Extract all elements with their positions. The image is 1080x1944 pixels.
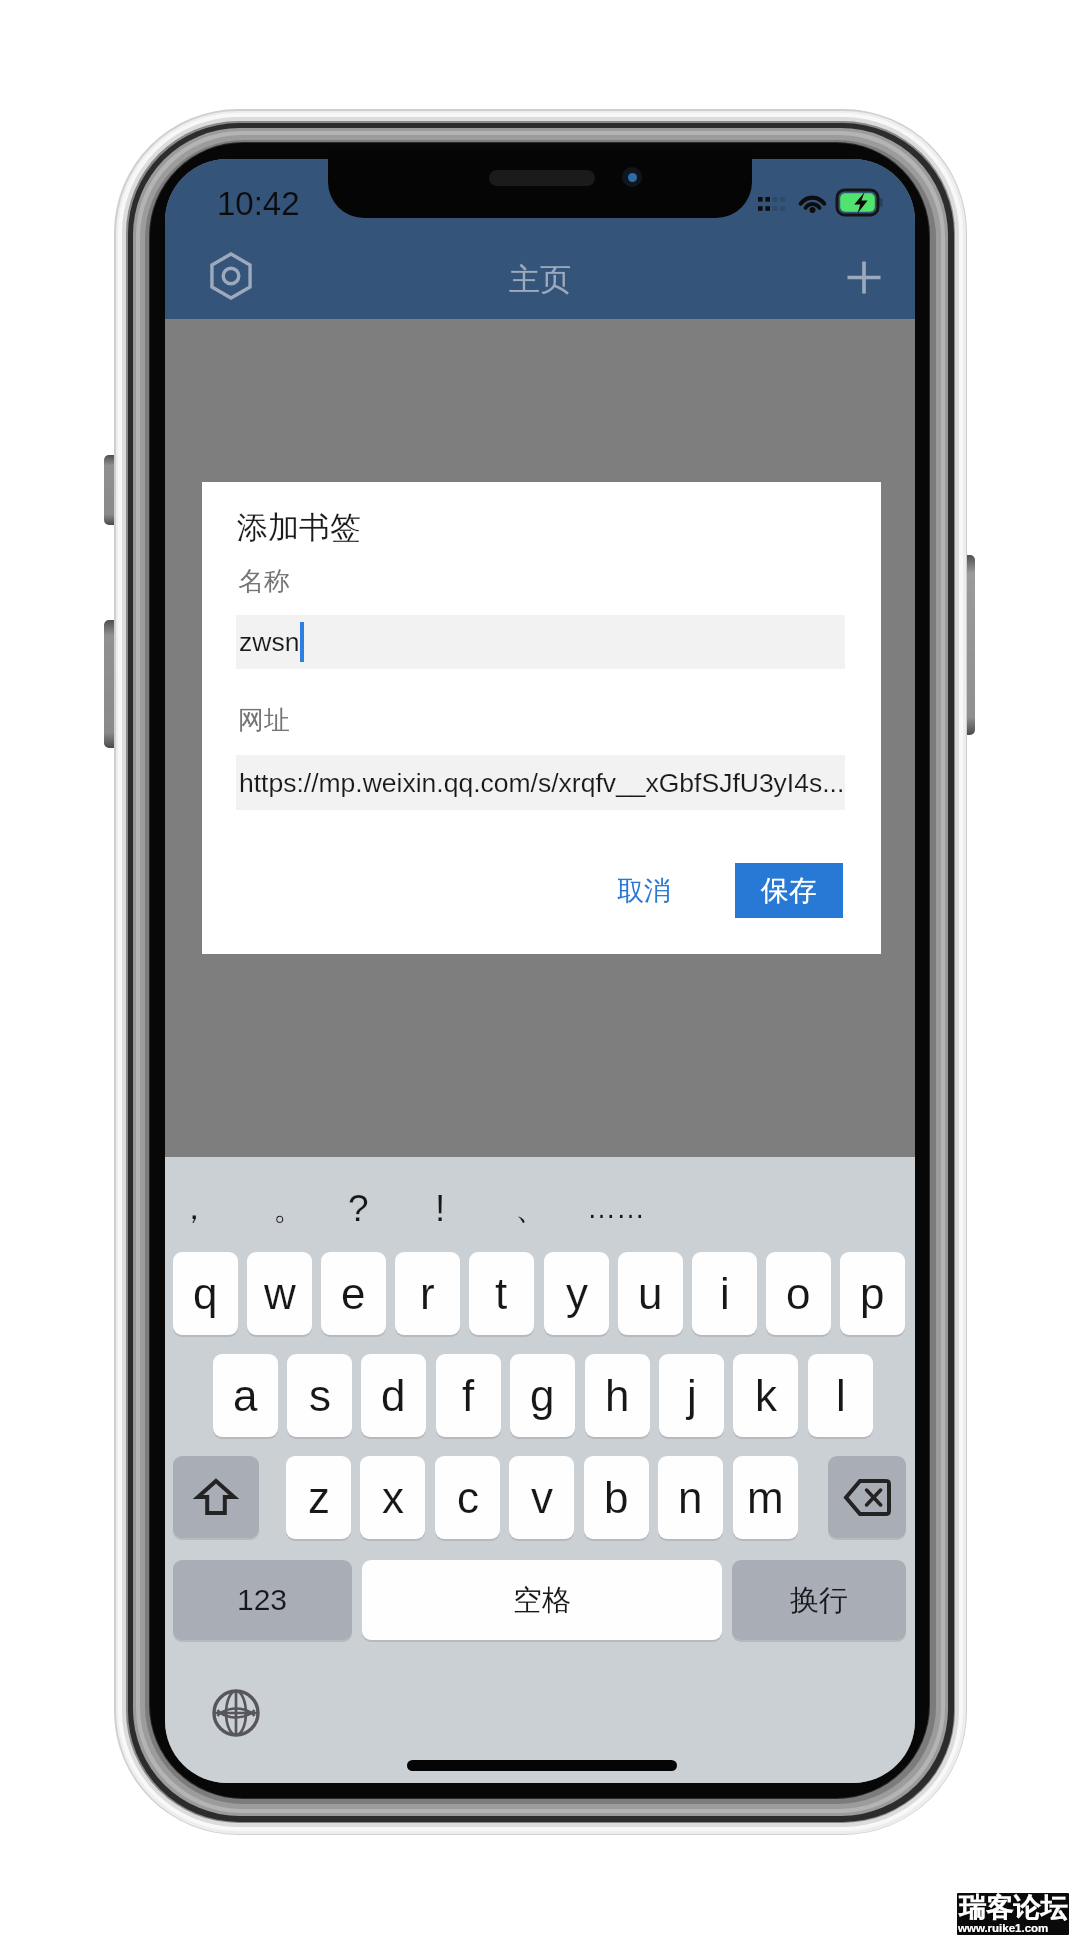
button[interactable]: …… <box>578 1175 654 1241</box>
button[interactable]: b <box>584 1456 649 1539</box>
staticText: j <box>687 1371 697 1420</box>
button[interactable]: l <box>808 1354 873 1437</box>
button[interactable]: 123 <box>173 1560 352 1640</box>
button[interactable]: h <box>585 1354 650 1437</box>
staticText: t <box>495 1269 508 1318</box>
button[interactable]: ! <box>402 1175 478 1241</box>
button[interactable]: w <box>247 1252 312 1335</box>
staticText: 。 <box>273 1188 305 1228</box>
staticText: 空格 <box>513 1582 571 1619</box>
button[interactable]: y <box>544 1252 609 1335</box>
staticText: z <box>308 1473 330 1522</box>
staticText: g <box>530 1371 555 1420</box>
button[interactable]: c <box>435 1456 500 1539</box>
button[interactable]: ， <box>165 1175 232 1241</box>
staticText: b <box>604 1473 629 1522</box>
staticText: n <box>678 1473 703 1522</box>
button[interactable]: v <box>509 1456 574 1539</box>
staticText: 瑞客论坛 <box>959 1893 1067 1925</box>
staticText: s <box>309 1371 331 1420</box>
button[interactable]: a <box>213 1354 278 1437</box>
staticText: https://mp.weixin.qq.com/s/xrqfv__xGbfSJ… <box>239 768 845 798</box>
button[interactable]: 删除 <box>828 1456 906 1538</box>
button[interactable]: m <box>733 1456 798 1539</box>
staticText: f <box>462 1371 475 1420</box>
staticText: k <box>755 1371 777 1420</box>
button[interactable]: u <box>618 1252 683 1335</box>
button[interactable]: g <box>510 1354 575 1437</box>
staticText: x <box>382 1473 404 1522</box>
button[interactable]: e <box>321 1252 386 1335</box>
staticText: i <box>720 1269 730 1318</box>
button[interactable]: 换行 <box>732 1560 906 1640</box>
button[interactable]: 。 <box>251 1175 327 1241</box>
button[interactable]: 空格 <box>362 1560 722 1640</box>
staticText: 名称 <box>238 565 290 598</box>
staticText: a <box>233 1371 258 1420</box>
staticText: zwsn <box>239 627 300 657</box>
button[interactable]: https://mp.weixin.qq.com/s/xrqfv__xGbfSJ… <box>236 755 845 810</box>
button[interactable]: s <box>287 1354 352 1437</box>
staticText: …… <box>587 1192 645 1224</box>
staticText: 添加书签 <box>237 508 361 547</box>
button[interactable]: k <box>733 1354 798 1437</box>
staticText: ? <box>348 1188 369 1229</box>
staticText: r <box>420 1269 435 1318</box>
staticText: l <box>836 1371 846 1420</box>
staticText: 10:42 <box>217 185 300 222</box>
staticText: 、 <box>515 1188 547 1228</box>
button[interactable]: r <box>395 1252 460 1335</box>
staticText: 主页 <box>509 260 571 299</box>
staticText: h <box>605 1371 630 1420</box>
button[interactable]: z <box>286 1456 351 1539</box>
staticText: p <box>860 1269 885 1318</box>
button[interactable]: f <box>436 1354 501 1437</box>
button[interactable]: 、 <box>493 1175 569 1241</box>
staticText: v <box>531 1473 553 1522</box>
staticText: e <box>341 1269 366 1318</box>
button[interactable]: n <box>658 1456 723 1539</box>
button[interactable]: Shift <box>173 1456 259 1538</box>
button[interactable]: o <box>766 1252 831 1335</box>
staticText: 保存 <box>761 873 817 908</box>
button[interactable]: zwsn <box>236 615 845 669</box>
staticText: 123 <box>237 1583 288 1617</box>
button[interactable]: 保存 <box>735 863 843 918</box>
button[interactable]: d <box>361 1354 426 1437</box>
staticText: 取消 <box>617 874 671 908</box>
staticText: c <box>457 1473 479 1522</box>
staticText: m <box>747 1473 784 1522</box>
button[interactable]: q <box>173 1252 238 1335</box>
button[interactable]: p <box>840 1252 905 1335</box>
staticText: www.ruike1.com <box>958 1922 1049 1935</box>
button[interactable]: t <box>469 1252 534 1335</box>
staticText: 换行 <box>790 1582 848 1619</box>
button[interactable]: 设置 <box>197 242 265 310</box>
button[interactable]: j <box>659 1354 724 1437</box>
staticText: d <box>381 1371 406 1420</box>
button[interactable]: 添加书签 <box>830 243 898 311</box>
button[interactable]: ? <box>320 1175 396 1241</box>
button[interactable]: x <box>360 1456 425 1539</box>
button[interactable]: 取消 <box>600 862 688 920</box>
staticText: ! <box>435 1188 446 1229</box>
staticText: u <box>638 1269 663 1318</box>
staticText: w <box>264 1269 296 1318</box>
staticText: q <box>193 1269 218 1318</box>
button[interactable]: i <box>692 1252 757 1335</box>
staticText: o <box>786 1269 811 1318</box>
staticText: y <box>566 1269 588 1318</box>
staticText: 网址 <box>238 704 290 737</box>
button[interactable]: 切换键盘 <box>206 1683 266 1743</box>
staticText: ， <box>178 1188 210 1228</box>
